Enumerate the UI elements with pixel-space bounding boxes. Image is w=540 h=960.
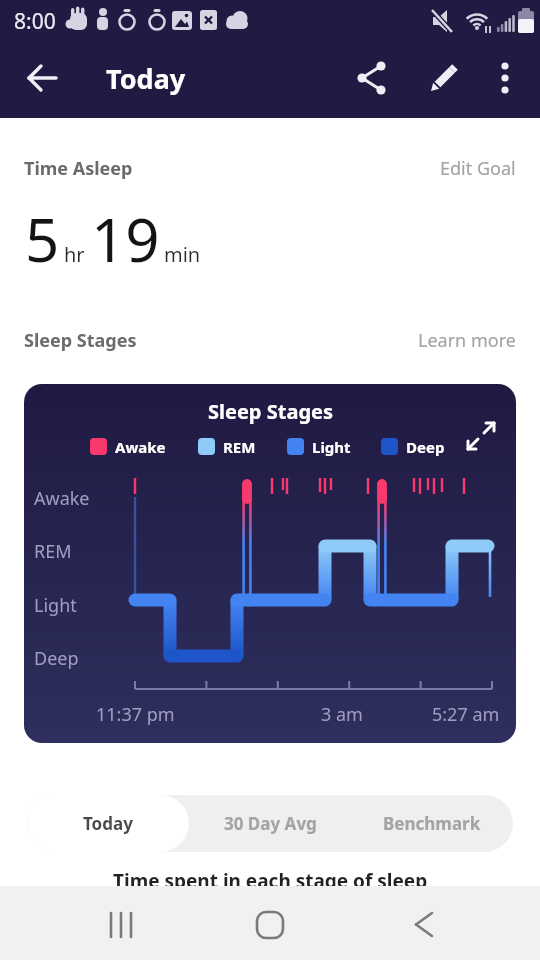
staticText: Today [106,60,186,97]
staticText: Awake [115,437,166,457]
button[interactable] [18,62,62,94]
staticText: Sleep Stages [208,398,333,425]
staticText: 5 [25,198,60,280]
staticText: 19 [91,198,160,280]
staticText: 11:37 pm [96,702,175,726]
staticText: Time spent in each stage of sleep [113,868,428,894]
staticText: 8:00 [14,7,56,36]
button[interactable] [354,60,390,96]
staticText: min [164,241,201,268]
staticText: 30 Day Avg [224,812,317,835]
staticText: Deep [406,437,445,457]
button[interactable] [426,60,462,96]
staticText: REM [34,539,72,564]
staticText: Time Asleep [24,156,133,181]
button[interactable]: Learn more [418,328,516,353]
staticText: Today [83,812,133,835]
staticText: hr [64,241,85,268]
button[interactable]: Today [27,795,189,852]
button[interactable]: Sleep Stages [24,384,516,743]
button[interactable]: 30 Day Avg [189,795,351,852]
button[interactable] [462,417,502,457]
button[interactable] [488,60,522,94]
staticText: REM [223,437,256,457]
button[interactable] [246,912,294,960]
staticText: 5:27 am [432,702,500,726]
staticText: Light [34,593,77,618]
button[interactable]: Benchmark [351,795,513,852]
staticText: 3 am [321,702,363,726]
staticText: Sleep Stages [24,328,137,353]
button[interactable]: Edit Goal [440,156,516,181]
staticText: Awake [34,486,90,511]
button[interactable] [97,912,145,960]
staticText: Deep [34,646,79,671]
staticText: Light [312,437,351,457]
button[interactable] [401,912,449,960]
staticText: Benchmark [383,812,481,835]
